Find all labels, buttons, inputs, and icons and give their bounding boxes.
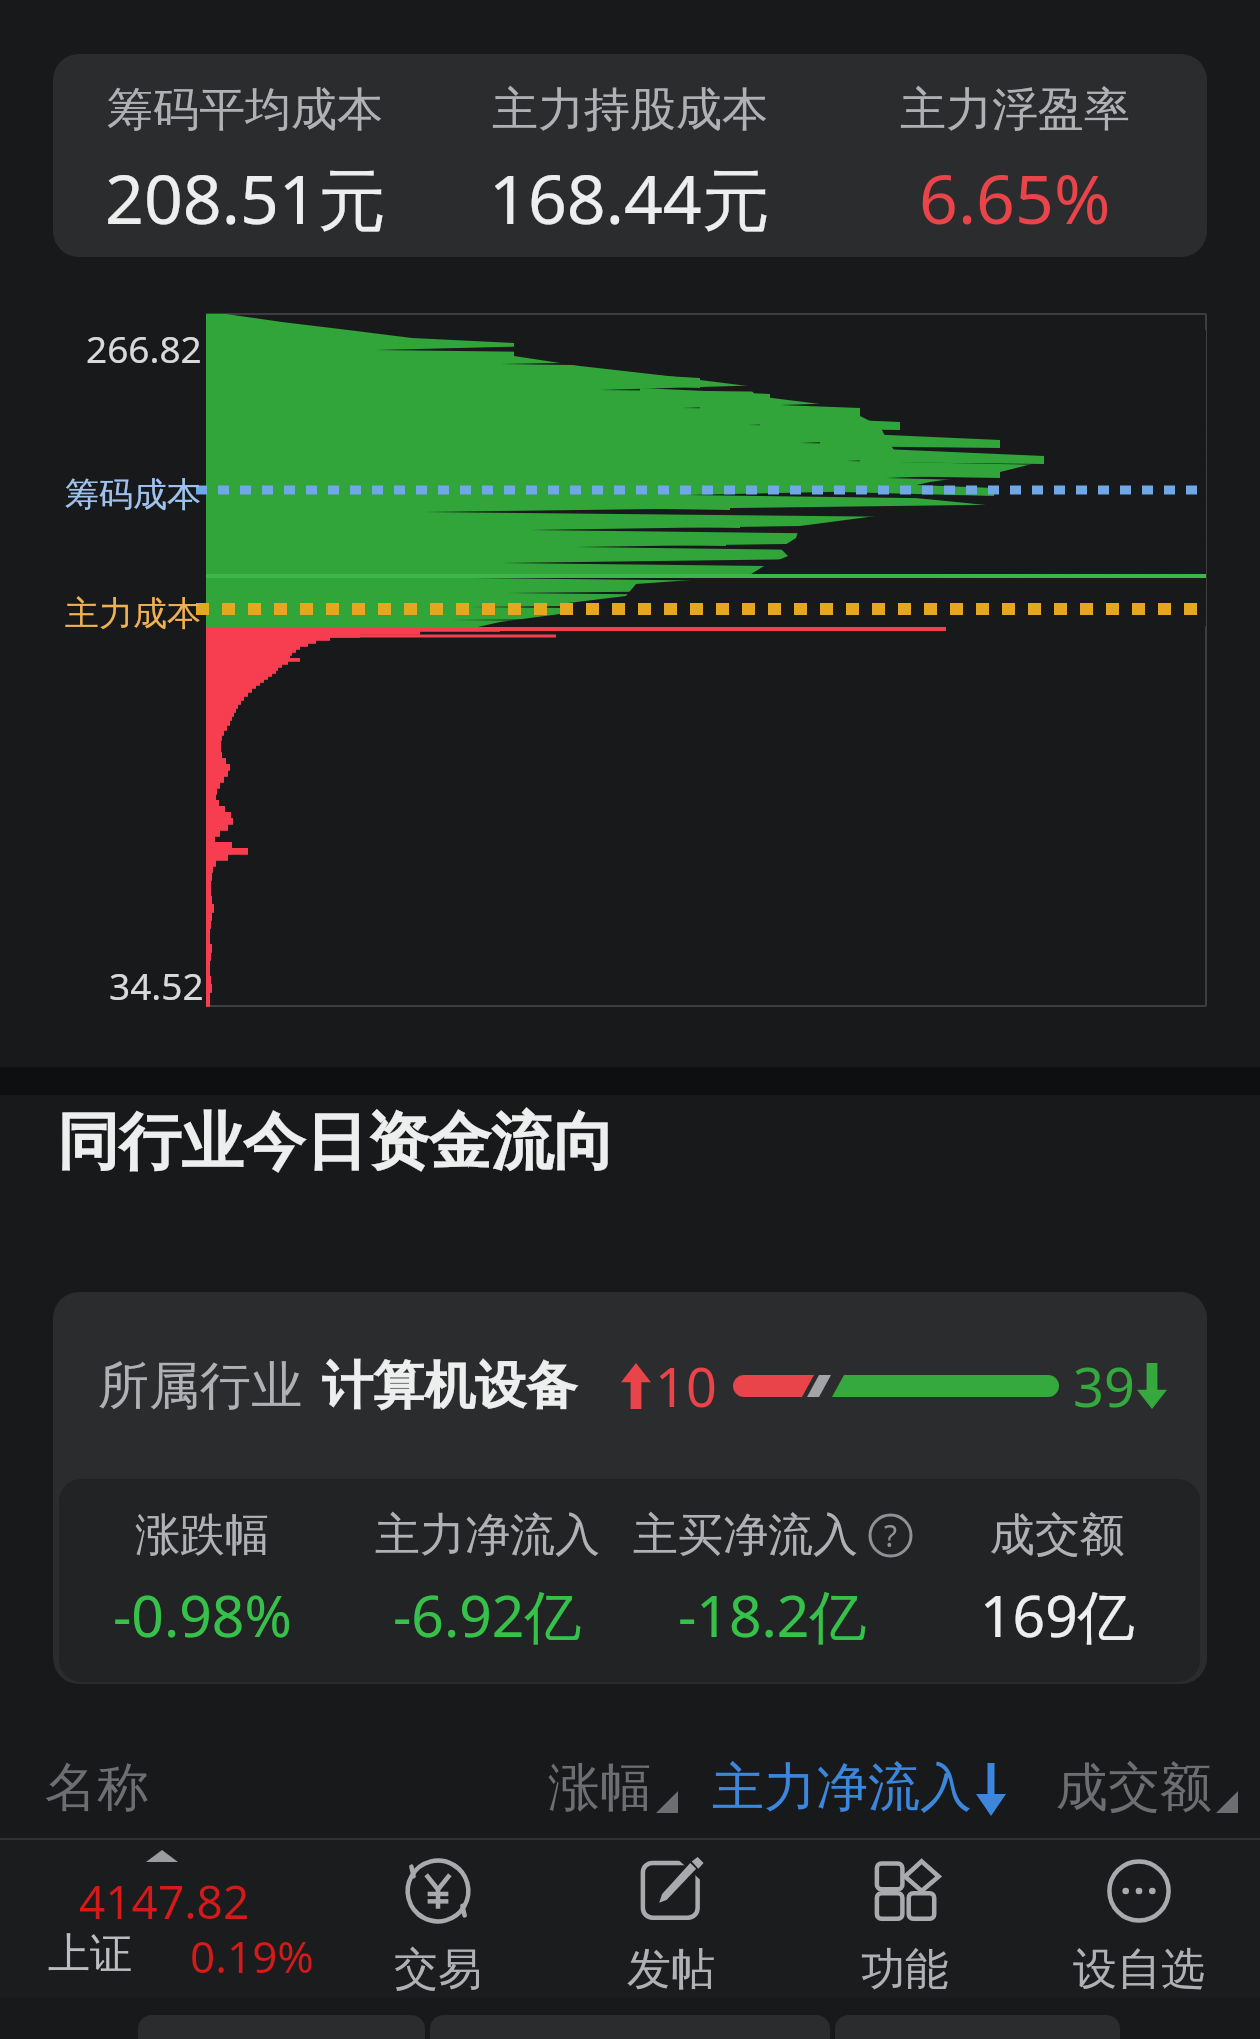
staticText: 功能	[861, 1942, 949, 1997]
button[interactable]: 设自选	[1022, 1840, 1256, 1998]
staticText: 同行业今日资金流向	[57, 1103, 615, 1181]
button[interactable]: 4147.82	[0, 1840, 340, 1998]
button[interactable]: 功能	[788, 1840, 1022, 1998]
staticText: 主力净流入	[375, 1507, 600, 1564]
staticText: -0.98%	[113, 1576, 292, 1654]
staticText: 所属行业	[98, 1354, 302, 1418]
staticText: 主力持股成本	[492, 81, 768, 139]
staticText: 成交额	[1056, 1755, 1212, 1821]
staticText: 主力成本	[65, 592, 201, 635]
staticText: ?	[884, 1515, 898, 1556]
button[interactable]: 交易	[321, 1840, 554, 1998]
staticText: 169亿	[980, 1576, 1135, 1654]
staticText: 涨幅	[548, 1755, 652, 1821]
staticText: 168.44元	[489, 151, 770, 244]
staticText: 主买净流入	[633, 1507, 858, 1564]
staticText: -6.92亿	[393, 1576, 582, 1654]
staticText: 计算机设备	[322, 1354, 577, 1418]
staticText: 筹码成本	[65, 473, 201, 516]
staticText: 交易	[394, 1942, 482, 1997]
staticText: 上证	[48, 1928, 132, 1981]
staticText: 4147.82	[79, 1870, 250, 1933]
staticText: 名称	[45, 1755, 149, 1821]
button[interactable]: 筹码平均成本	[53, 54, 1207, 257]
staticText: 0.19%	[190, 1926, 314, 1986]
staticText: 39	[1073, 1349, 1135, 1423]
staticText: 34.52	[109, 960, 204, 1010]
button[interactable]: 主力净流入	[712, 1755, 1010, 1821]
staticText: 10	[655, 1349, 717, 1423]
staticText: 6.65%	[919, 151, 1111, 244]
button[interactable]: 发帖	[554, 1840, 788, 1998]
staticText: 设自选	[1073, 1942, 1205, 1997]
staticText: 266.82	[86, 323, 202, 373]
staticText: 筹码平均成本	[107, 81, 383, 139]
staticText: -18.2亿	[678, 1576, 867, 1654]
staticText: 主力净流入	[712, 1755, 972, 1821]
button[interactable]: 所属行业	[53, 1292, 1207, 1684]
staticText: 涨跌幅	[135, 1507, 270, 1564]
button[interactable]: 涨幅	[548, 1755, 678, 1821]
staticText: 成交额	[990, 1507, 1125, 1564]
button[interactable]: 成交额	[1056, 1755, 1238, 1821]
staticText: 发帖	[627, 1942, 715, 1997]
staticText: 主力浮盈率	[900, 81, 1130, 139]
staticText: 208.51元	[105, 151, 386, 244]
